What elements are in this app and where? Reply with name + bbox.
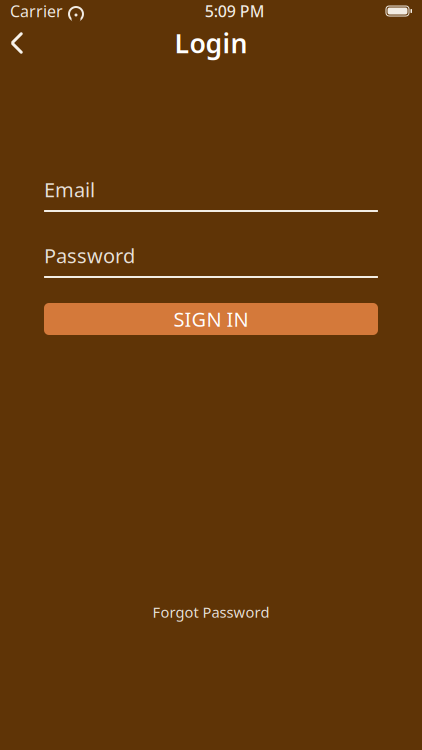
staticText: Email	[44, 176, 95, 203]
staticText: Forgot Password	[152, 602, 269, 622]
staticText: Password	[44, 242, 135, 269]
staticText: Carrier	[10, 0, 63, 22]
button[interactable]: Forgot Password	[0, 603, 422, 621]
button[interactable]: Back	[0, 23, 34, 63]
staticText: 5:09 PM	[205, 0, 265, 22]
staticText: SIGN IN	[173, 306, 248, 332]
button[interactable]: SIGN IN	[44, 303, 378, 335]
staticText: Login	[174, 25, 247, 61]
